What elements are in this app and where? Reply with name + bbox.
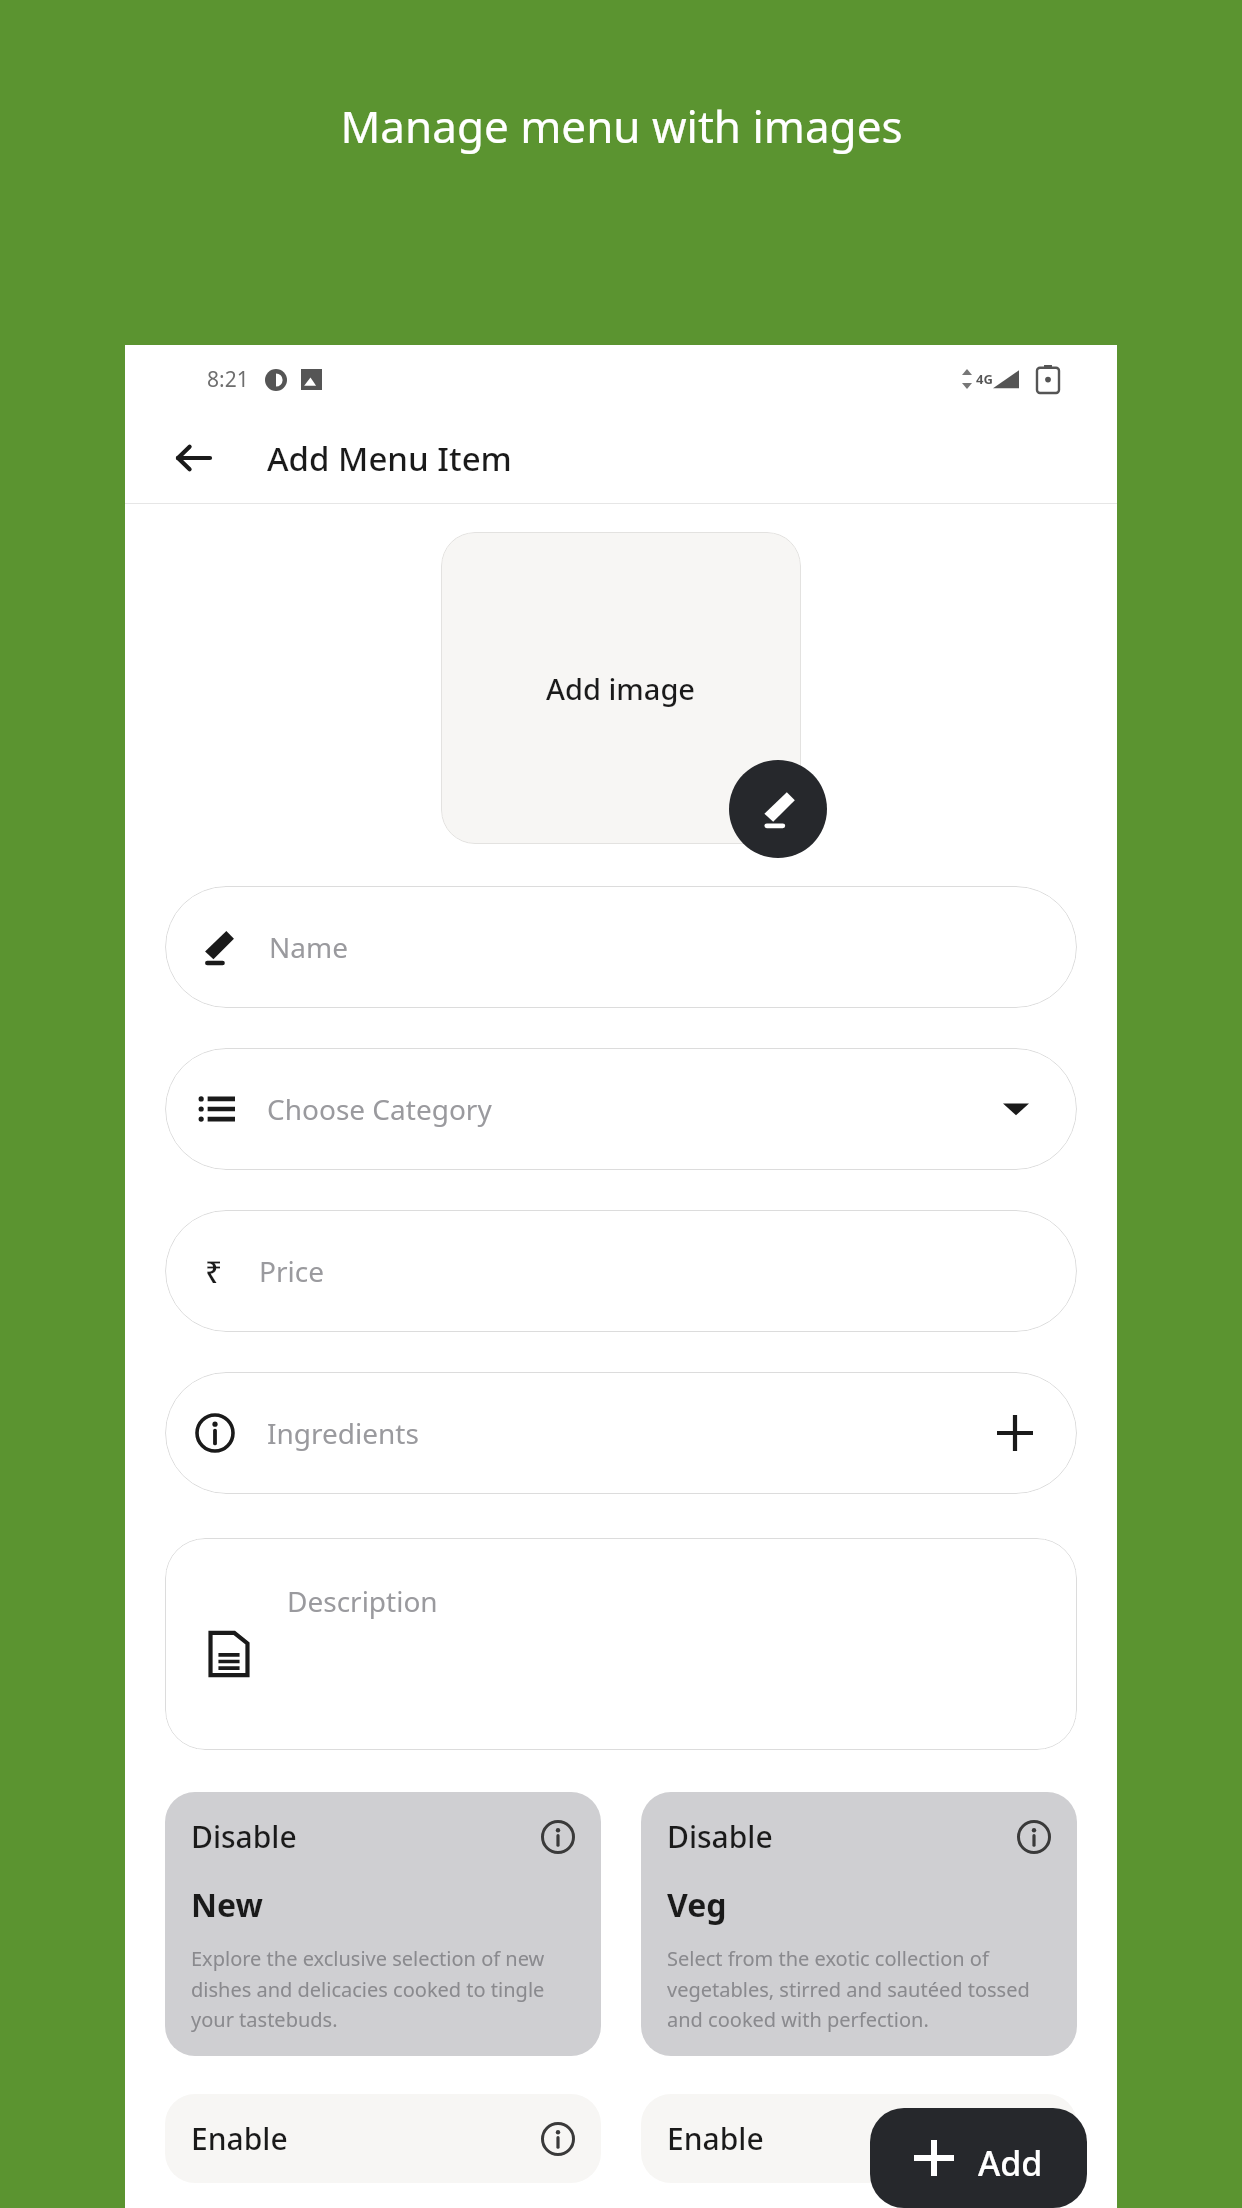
button[interactable]: Add xyxy=(870,2108,1087,2208)
staticText: 4G xyxy=(976,370,993,388)
staticText: Explore the exclusive selection of new d… xyxy=(191,1945,575,2032)
staticText: Select from the exotic collection of veg… xyxy=(667,1945,1051,2032)
staticText: Manage menu with images xyxy=(340,96,903,156)
button[interactable]: Add image xyxy=(441,532,801,844)
button[interactable]: Add ingredient xyxy=(987,1405,1043,1461)
staticText: ₹ xyxy=(205,1251,223,1292)
staticText: Add image xyxy=(546,669,696,708)
staticText: Disable xyxy=(667,1816,773,1857)
button[interactable]: ₹ xyxy=(165,1210,1077,1332)
staticText: Add Menu Item xyxy=(267,436,512,481)
staticText: Name xyxy=(269,928,348,966)
staticText: Veg xyxy=(667,1883,727,1927)
staticText: Disable xyxy=(191,1816,297,1857)
button[interactable]: Ingredients xyxy=(165,1372,1077,1494)
staticText: New xyxy=(191,1883,263,1927)
staticText: Price xyxy=(259,1252,324,1290)
button[interactable]: Choose Category xyxy=(165,1048,1077,1170)
staticText: Ingredients xyxy=(267,1414,419,1452)
staticText: Enable xyxy=(191,2118,288,2159)
button[interactable]: Disable xyxy=(641,1792,1077,2056)
button[interactable]: Back xyxy=(161,426,225,490)
staticText: Choose Category xyxy=(267,1090,492,1128)
button[interactable]: Enable xyxy=(641,2094,1077,2183)
button[interactable]: Edit image xyxy=(729,760,827,858)
staticText: Enable xyxy=(667,2118,764,2159)
button[interactable]: Enable xyxy=(165,2094,601,2183)
staticText: Add xyxy=(978,2140,1043,2176)
button[interactable]: Name xyxy=(165,886,1077,1008)
staticText: Description xyxy=(287,1582,438,1620)
button[interactable]: Description xyxy=(165,1538,1077,1750)
staticText: 8:21 xyxy=(207,365,249,394)
button[interactable]: Disable xyxy=(165,1792,601,2056)
